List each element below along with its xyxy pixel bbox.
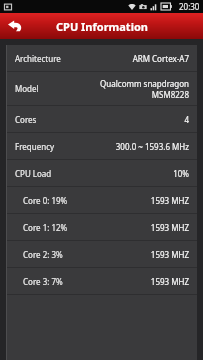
button[interactable]: Frequency [7,133,197,159]
staticText: 1593 MHZ [150,195,189,206]
staticText: 300.0 ~ 1593.6 MHz [115,141,189,152]
staticText: 10% [173,168,189,179]
staticText: Frequency [15,141,55,152]
staticText: Core 1: 12% [23,222,68,233]
button[interactable]: Model [7,72,197,105]
button[interactable]: CPU Load [7,160,197,186]
staticText: Core 3: 7% [23,276,63,287]
staticText: Qualcomm snapdragon [100,78,189,89]
button[interactable]: Back [0,13,30,39]
staticText: MSM8228 [151,89,189,100]
staticText: Core 2: 3% [23,249,63,260]
staticText: CPU Information [56,19,148,34]
button[interactable]: Core 2: 3% [7,241,197,267]
staticText: Architecture [15,53,61,64]
staticText: Core 0: 19% [23,195,68,206]
staticText: 20:30 [179,1,200,12]
staticText: 1593 MHZ [150,276,189,287]
button[interactable]: Core 3: 7% [7,268,197,294]
button[interactable]: Core 0: 19% [7,187,197,213]
staticText: Cores [15,114,37,125]
staticText: Model [15,83,39,94]
button[interactable]: Core 1: 12% [7,214,197,240]
staticText: 1593 MHZ [150,249,189,260]
staticText: CPU Load [15,168,52,179]
button[interactable]: Cores [7,106,197,132]
staticText: 4 [184,114,189,125]
staticText: ARM Cortex-A7 [132,53,189,64]
staticText: 1593 MHZ [150,222,189,233]
button[interactable]: Architecture [7,45,197,71]
